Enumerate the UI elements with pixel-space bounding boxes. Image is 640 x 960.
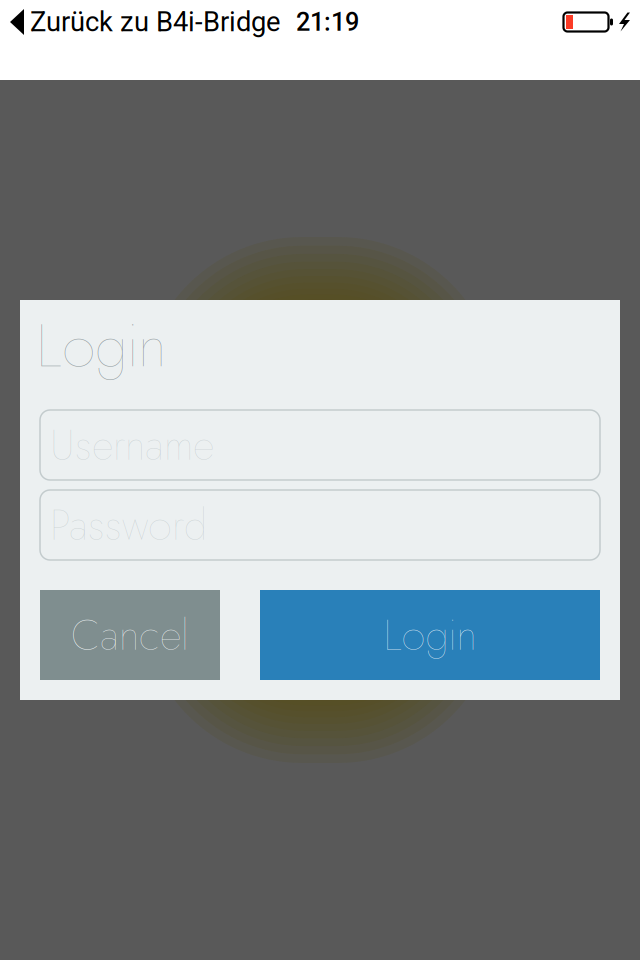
staticText: Password bbox=[50, 494, 207, 556]
staticText: Login bbox=[383, 604, 476, 666]
button[interactable]: 21:19 bbox=[288, 0, 359, 44]
button[interactable]: Username bbox=[40, 410, 600, 480]
staticText: Login bbox=[36, 302, 167, 389]
button[interactable]: Login bbox=[260, 590, 600, 680]
button[interactable]: Cancel bbox=[40, 590, 220, 680]
staticText: Zurück zu B4i-Bridge bbox=[30, 6, 280, 38]
staticText: 21:19 bbox=[296, 7, 359, 37]
button[interactable]: Zurück zu B4i-Bridge bbox=[0, 0, 288, 44]
button[interactable]: Password bbox=[40, 490, 600, 560]
staticText: Username bbox=[50, 414, 214, 476]
staticText: Cancel bbox=[71, 604, 189, 666]
